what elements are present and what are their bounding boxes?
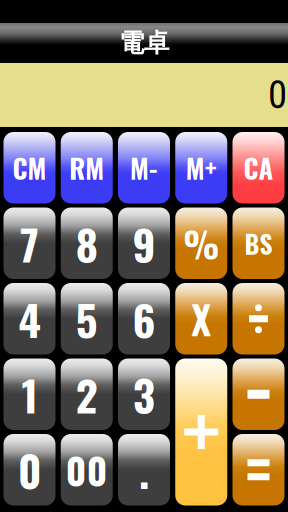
button[interactable]: CA (232, 132, 284, 203)
staticText: 9 (132, 212, 155, 275)
button[interactable]: M- (118, 132, 170, 203)
button[interactable]: 9 (118, 207, 170, 279)
staticText: 2 (76, 363, 98, 426)
button[interactable]: BS (232, 207, 284, 279)
button[interactable]: 8 (61, 207, 113, 279)
button[interactable]: 7 (3, 207, 55, 279)
button[interactable]: CM (3, 132, 55, 203)
staticText: 0 (268, 72, 287, 118)
staticText: M- (130, 148, 158, 187)
button[interactable]: Divide (232, 283, 284, 354)
button[interactable]: . (118, 434, 170, 505)
button[interactable]: Minus (232, 358, 284, 430)
button[interactable]: 2 (61, 358, 113, 430)
button[interactable]: 4 (3, 283, 55, 354)
button[interactable]: X (175, 283, 227, 354)
staticText: BS (244, 224, 272, 262)
staticText: 0 (18, 438, 41, 501)
staticText: 電卓 (119, 27, 169, 58)
staticText: 4 (18, 287, 40, 350)
staticText: CM (12, 148, 46, 187)
button[interactable]: Equals (232, 434, 284, 505)
button[interactable]: % (175, 207, 227, 279)
staticText: % (183, 217, 219, 270)
button[interactable]: Plus (175, 358, 227, 505)
staticText: 7 (20, 212, 39, 275)
staticText: X (191, 290, 211, 347)
button[interactable]: RM (61, 132, 113, 203)
button[interactable]: 6 (118, 283, 170, 354)
staticText: M+ (186, 148, 217, 187)
button[interactable]: M+ (175, 132, 227, 203)
staticText: 8 (76, 212, 98, 275)
staticText: CA (243, 148, 273, 187)
staticText: . (139, 438, 149, 501)
button[interactable]: 5 (61, 283, 113, 354)
button[interactable]: 1 (3, 358, 55, 430)
staticText: RM (69, 148, 104, 187)
button[interactable]: 0 (3, 434, 55, 505)
staticText: 1 (21, 363, 37, 426)
button[interactable]: 00 (61, 434, 113, 505)
staticText: 00 (66, 442, 108, 497)
staticText: 6 (132, 287, 155, 350)
staticText: 5 (76, 287, 98, 350)
button[interactable]: 3 (118, 358, 170, 430)
staticText: 3 (133, 363, 155, 426)
